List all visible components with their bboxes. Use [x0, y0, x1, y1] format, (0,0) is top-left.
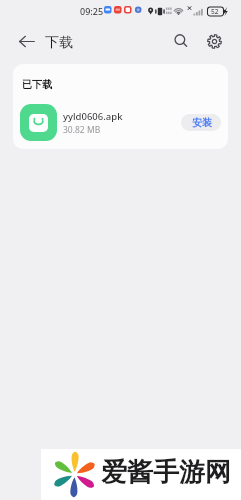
staticText: 已下载 — [22, 78, 52, 91]
button[interactable]: Back — [8, 22, 46, 60]
staticText: 09:25 — [80, 5, 104, 17]
staticText: 52 — [211, 7, 219, 16]
button[interactable]: Search — [162, 22, 200, 60]
button[interactable]: Settings — [195, 22, 233, 60]
button[interactable]: yyld0606.apk — [13, 91, 228, 149]
staticText: 下载 — [45, 34, 73, 52]
staticText: 安装 — [192, 116, 212, 129]
staticText: 爱酱手游网 — [101, 456, 231, 489]
staticText: yyld0606.apk — [63, 110, 123, 123]
button[interactable]: 安装 — [181, 114, 221, 131]
staticText: 30.82 MB — [63, 124, 101, 136]
